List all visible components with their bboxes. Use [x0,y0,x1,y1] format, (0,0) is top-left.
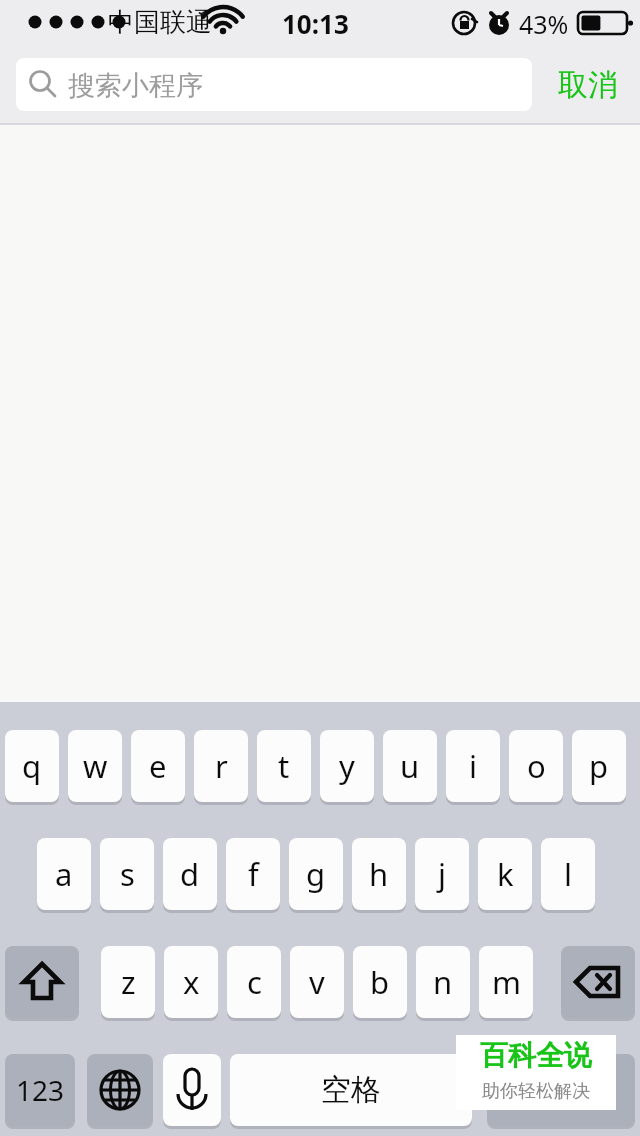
staticText: d [180,853,200,895]
button[interactable]: s [100,838,154,910]
staticText: i [469,745,477,787]
button[interactable]: t [257,730,311,802]
staticText: b [370,961,390,1003]
staticText: 10:13 [282,6,349,41]
staticText: n [433,961,453,1003]
staticText: g [306,853,326,895]
staticText: h [369,853,389,895]
button[interactable]: m [479,946,533,1018]
button[interactable]: f [226,838,280,910]
staticText: z [121,961,136,1003]
staticText: m [492,961,521,1003]
button[interactable]: Next keyboard [87,1054,153,1126]
staticText: o [527,745,546,787]
button[interactable]: z [101,946,155,1018]
button[interactable]: c [227,946,281,1018]
button[interactable]: p [572,730,626,802]
staticText: 百科全说 [480,1038,592,1073]
staticText: y [339,745,355,787]
staticText: x [183,961,200,1003]
button[interactable]: n [416,946,470,1018]
button[interactable]: Backspace [561,946,635,1018]
button[interactable]: 空格 [230,1054,472,1126]
button[interactable]: i [446,730,500,802]
staticText: 123 [16,1071,65,1109]
button[interactable]: b [353,946,407,1018]
button[interactable]: Search [487,1054,635,1126]
button[interactable]: Dictation [163,1054,221,1126]
button[interactable]: g [289,838,343,910]
staticText: k [497,853,514,895]
button[interactable]: x [164,946,218,1018]
button[interactable]: v [290,946,344,1018]
staticText: s [120,853,135,895]
staticText: 空格 [321,1071,381,1109]
button[interactable]: k [478,838,532,910]
button[interactable]: r [194,730,248,802]
staticText: t [278,745,290,787]
button[interactable]: u [383,730,437,802]
button[interactable]: l [541,838,595,910]
button[interactable]: h [352,838,406,910]
staticText: 搜索小程序 [68,69,203,103]
staticText: c [247,961,262,1003]
button[interactable]: j [415,838,469,910]
staticText: v [309,961,325,1003]
button[interactable]: d [163,838,217,910]
staticText: 中国联通 [108,6,212,39]
staticText: j [438,853,446,895]
staticText: p [589,745,609,787]
staticText: r [215,745,228,787]
staticText: w [83,745,108,787]
staticText: a [55,853,73,895]
staticText: 助你轻松解决 [482,1080,590,1103]
button[interactable]: 123 [5,1054,75,1126]
button[interactable]: e [131,730,185,802]
button[interactable] [16,58,532,111]
button[interactable]: Shift [5,946,79,1018]
staticText: q [22,745,42,787]
button[interactable]: y [320,730,374,802]
staticText: 43% [519,7,569,41]
staticText: u [400,745,420,787]
button[interactable]: q [5,730,59,802]
button[interactable]: 取消 [546,58,630,111]
staticText: e [149,745,167,787]
button[interactable]: w [68,730,122,802]
button[interactable]: o [509,730,563,802]
button[interactable]: a [37,838,91,910]
staticText: l [564,853,572,895]
staticText: 取消 [558,66,618,104]
staticText: f [248,853,259,895]
